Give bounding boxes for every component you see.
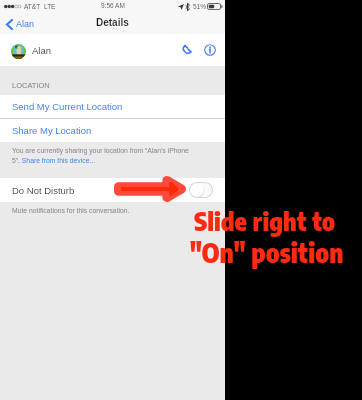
staticText: You are currently sharing your location … <box>12 147 189 155</box>
button[interactable]: Do Not Disturb switch, off <box>189 182 213 198</box>
staticText: Mute notifications for this conversation… <box>12 207 130 215</box>
button[interactable]: Contact info <box>201 41 219 59</box>
staticText: Alan <box>32 45 52 56</box>
staticText: Alan <box>16 19 35 29</box>
button[interactable]: Alan <box>0 16 43 32</box>
staticText: AT&T <box>24 3 41 10</box>
staticText: 9:56 AM <box>101 2 125 9</box>
staticText: Send My Current Location <box>12 101 123 112</box>
button[interactable]: Alan <box>0 34 225 66</box>
staticText: 5”. Share from this device... <box>12 157 96 165</box>
button[interactable]: Share My Location <box>0 119 225 142</box>
button[interactable]: Send My Current Location <box>0 95 225 118</box>
staticText: Details <box>96 17 129 28</box>
staticText: 51% <box>193 3 207 10</box>
staticText: Share My Location <box>12 125 92 136</box>
staticText: LOCATION <box>12 81 50 89</box>
staticText: LTE <box>44 3 56 10</box>
staticText: "On" position <box>190 236 344 268</box>
staticText: Do Not Disturb <box>12 185 75 196</box>
staticText: Slide right to <box>194 205 336 236</box>
button[interactable]: Call Alan <box>178 41 196 59</box>
